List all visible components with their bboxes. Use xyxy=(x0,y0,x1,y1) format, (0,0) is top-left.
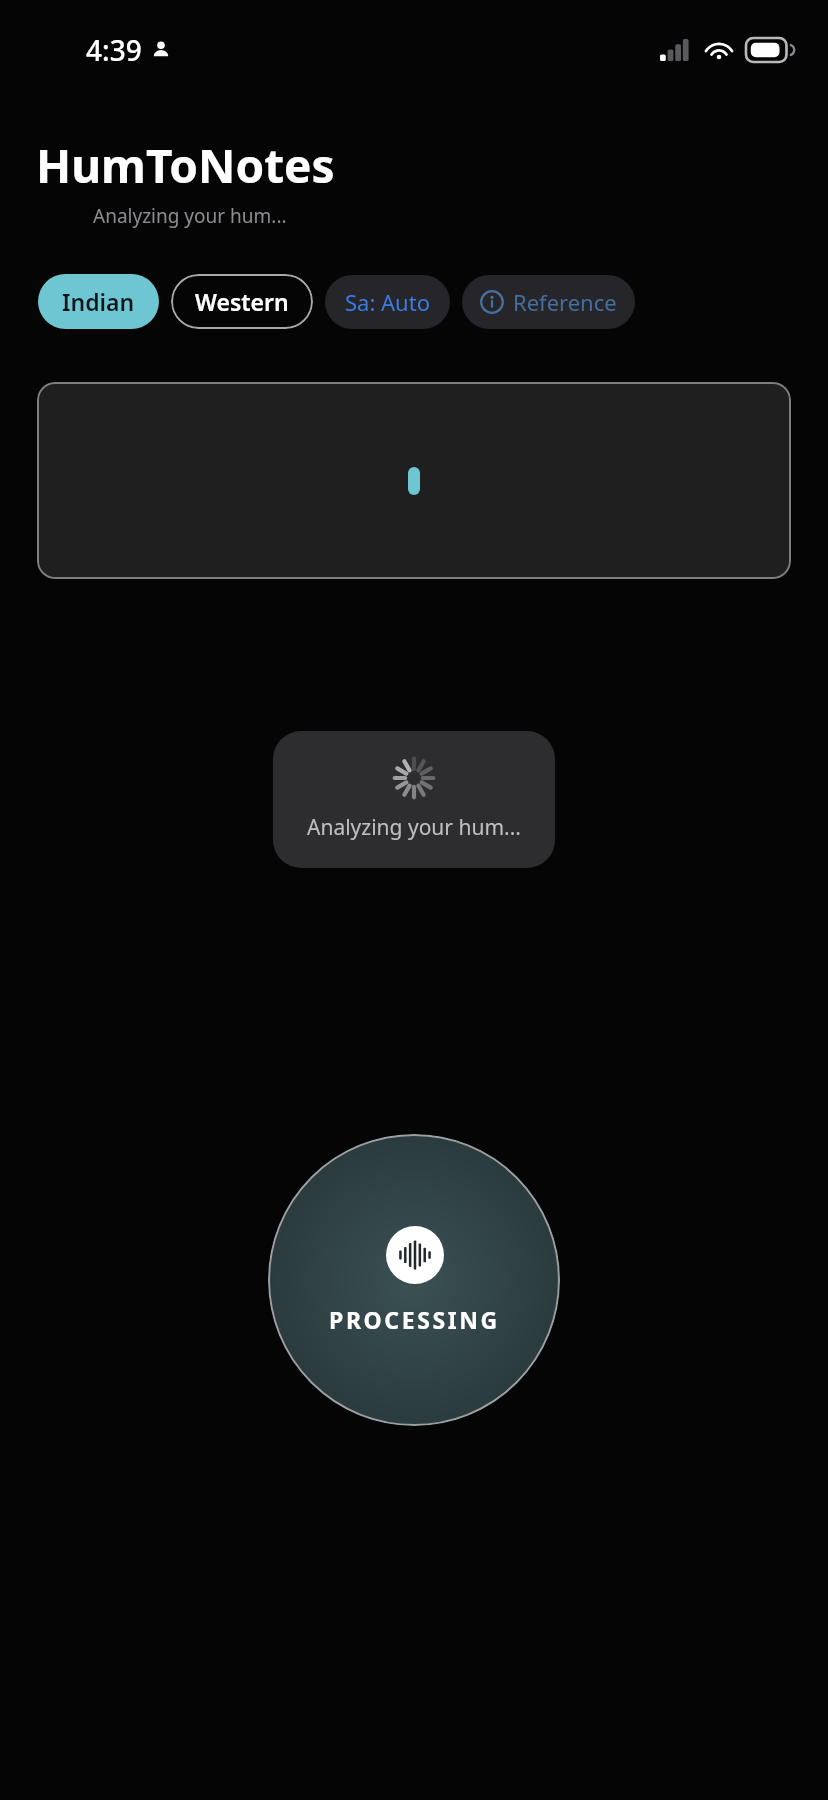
button[interactable] xyxy=(37,382,791,579)
button[interactable]: Indian xyxy=(38,274,159,329)
button[interactable]: Analyzing your hum... xyxy=(273,731,555,868)
staticText: Analyzing your hum... xyxy=(93,203,287,229)
staticText: HumToNotes xyxy=(36,134,335,197)
staticText: 4:39 xyxy=(86,31,142,69)
staticText: Western xyxy=(195,286,289,317)
staticText: PROCESSING xyxy=(329,1304,500,1335)
staticText: Reference xyxy=(513,287,617,317)
button[interactable]: Reference xyxy=(462,275,635,329)
staticText: Analyzing your hum... xyxy=(307,813,521,842)
button[interactable]: Processing hum recording xyxy=(268,1134,560,1426)
button[interactable]: Western xyxy=(171,274,313,329)
button[interactable]: Sa: Auto xyxy=(325,275,450,329)
staticText: Sa: Auto xyxy=(345,287,430,317)
staticText: Indian xyxy=(62,286,135,317)
